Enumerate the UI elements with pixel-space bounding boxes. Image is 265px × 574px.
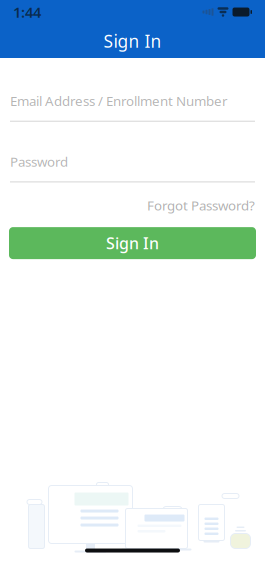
button[interactable]: Sign In <box>9 227 256 259</box>
staticText: Sign In <box>106 232 159 254</box>
staticText: Password <box>10 153 68 170</box>
button[interactable]: Forgot Password? <box>147 191 255 219</box>
staticText: 1:44 <box>13 2 41 22</box>
staticText: Email Address / Enrollment Number <box>10 92 228 110</box>
staticText: Forgot Password? <box>147 196 255 214</box>
staticText: Sign In <box>103 29 161 52</box>
